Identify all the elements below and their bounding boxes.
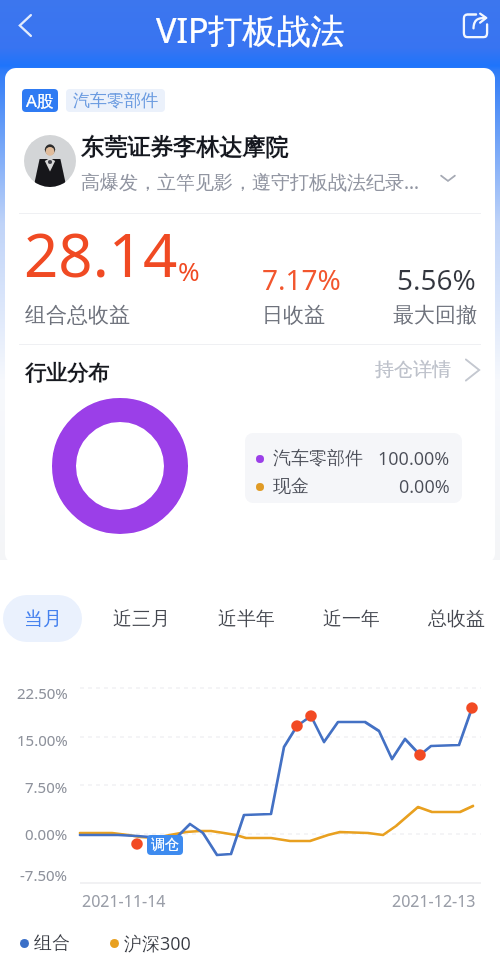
staticText: 沪深300 <box>124 931 191 956</box>
staticText: 组合总收益 <box>25 302 130 328</box>
staticText: 组合 <box>34 932 70 955</box>
staticText: 汽车零部件 <box>273 447 363 470</box>
staticText: VIP打板战法 <box>156 7 345 53</box>
staticText: 持仓详情 <box>375 358 451 382</box>
button[interactable]: 近一年 <box>313 595 390 642</box>
staticText: 15.00% <box>17 730 68 750</box>
staticText: 2021-11-14 <box>82 890 166 912</box>
button[interactable]: 近半年 <box>208 595 285 642</box>
staticText: 28.14 <box>24 213 178 295</box>
staticText: 22.50% <box>17 683 68 703</box>
staticText: 近三月 <box>113 607 170 631</box>
staticText: 近半年 <box>218 607 275 631</box>
staticText: A股 <box>26 89 54 112</box>
staticText: -7.50% <box>20 865 68 885</box>
staticText: 最大回撤 <box>393 302 477 328</box>
staticText: 东莞证券李林达摩院 <box>81 133 288 162</box>
staticText: 0.00% <box>399 474 450 499</box>
button[interactable]: Expand <box>432 162 464 194</box>
button[interactable]: 近三月 <box>103 595 180 642</box>
button[interactable]: 持仓详情 <box>371 354 484 386</box>
button[interactable]: Back <box>1 1 49 49</box>
button[interactable]: 当月 <box>3 595 82 642</box>
staticText: 当月 <box>24 607 62 631</box>
staticText: 日收益 <box>262 302 325 328</box>
staticText: 7.50% <box>25 777 68 797</box>
staticText: 行业分布 <box>25 360 109 386</box>
staticText: % <box>178 253 200 288</box>
button[interactable]: 总收益 <box>418 595 495 642</box>
staticText: 高爆发，立竿见影，遵守打板战法纪录… <box>81 169 420 195</box>
staticText: 2021-12-13 <box>392 890 476 912</box>
staticText: 100.00% <box>378 446 450 471</box>
button[interactable]: Share <box>451 1 499 49</box>
staticText: 汽车零部件 <box>73 90 158 111</box>
staticText: 5.56% <box>397 260 476 298</box>
staticText: 近一年 <box>323 607 380 631</box>
staticText: 现金 <box>273 475 309 498</box>
staticText: 7.17% <box>262 260 341 298</box>
staticText: 调仓 <box>151 836 179 854</box>
staticText: 0.00% <box>25 824 68 844</box>
staticText: 总收益 <box>428 607 485 631</box>
